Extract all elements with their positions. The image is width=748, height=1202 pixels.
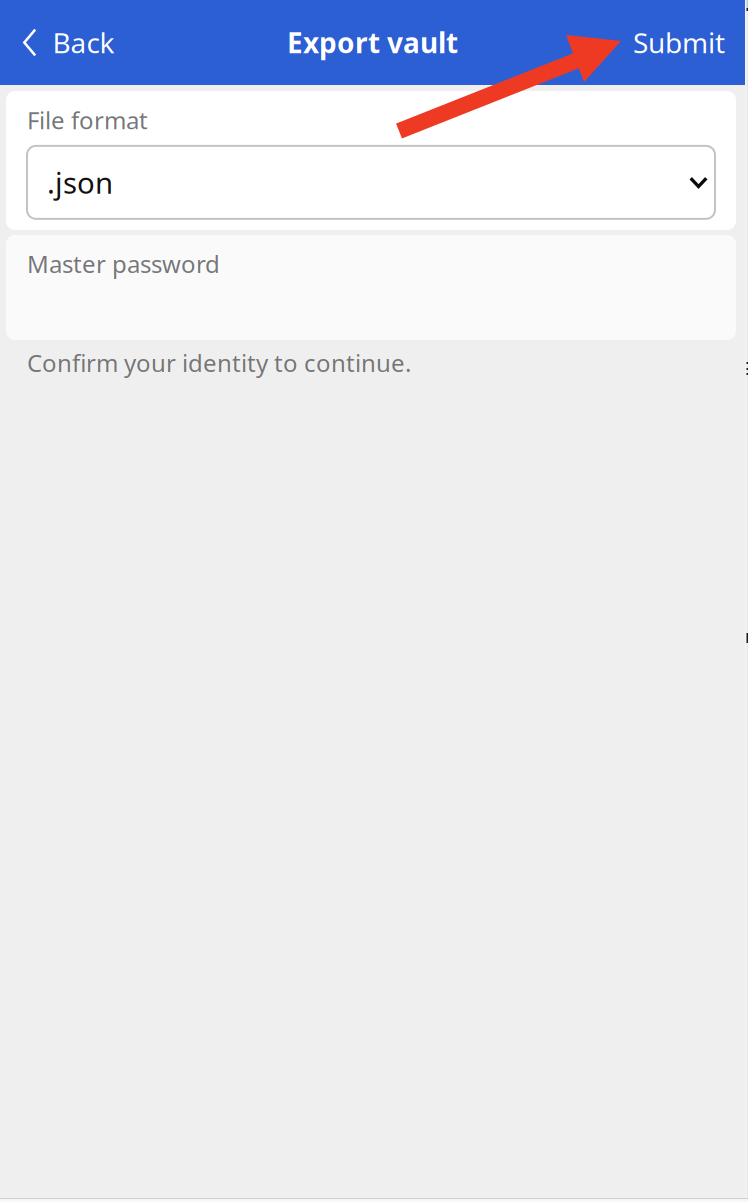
staticText: .json (47, 163, 113, 202)
button[interactable]: Master password (6, 235, 736, 340)
staticText: Confirm your identity to continue. (27, 347, 411, 379)
staticText: Back (52, 24, 114, 61)
staticText: Submit (633, 24, 725, 61)
button[interactable]: Submit (615, 0, 745, 85)
staticText: Master password (27, 248, 220, 280)
staticText: File format (27, 104, 148, 136)
button[interactable]: .json (27, 146, 715, 219)
button[interactable]: Back (0, 0, 130, 85)
staticText: Export vault (287, 24, 458, 61)
